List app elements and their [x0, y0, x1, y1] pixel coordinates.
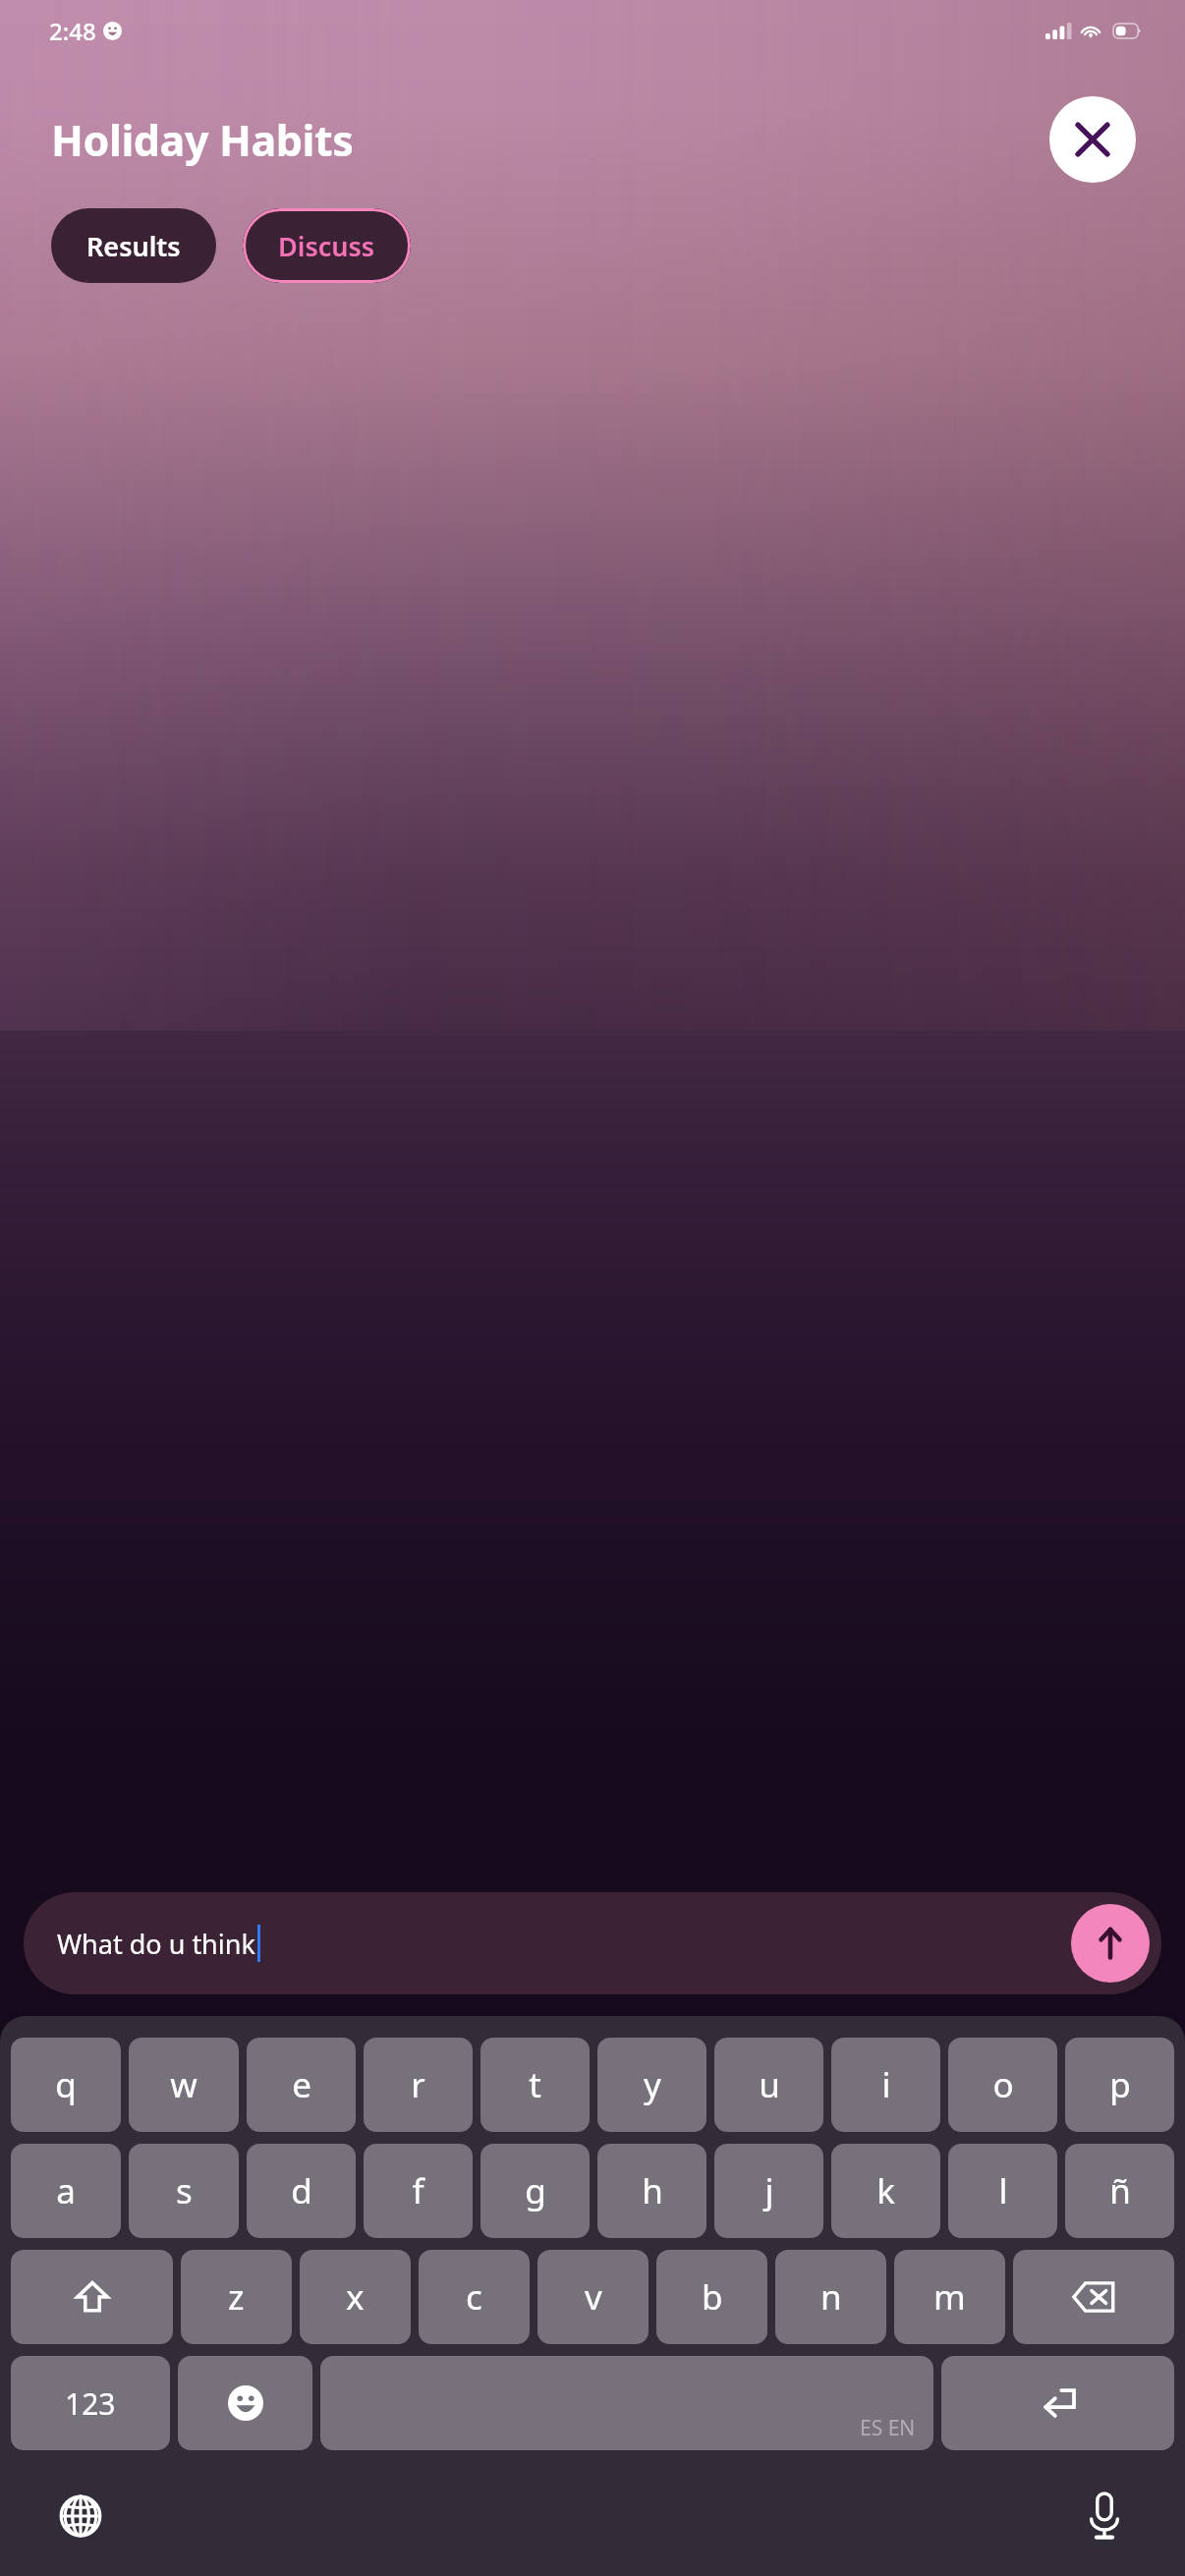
staticText: c — [466, 2273, 482, 2321]
button[interactable]: Backspace — [1013, 2250, 1174, 2344]
staticText: p — [1109, 2061, 1131, 2108]
staticText: n — [820, 2273, 842, 2321]
staticText: y — [644, 2061, 661, 2108]
staticText: k — [876, 2167, 895, 2214]
button[interactable]: u — [714, 2038, 823, 2132]
button[interactable]: j — [714, 2144, 823, 2238]
button[interactable]: a — [11, 2144, 121, 2238]
button[interactable]: ñ — [1065, 2144, 1174, 2238]
button[interactable]: c — [419, 2250, 530, 2344]
staticText: i — [881, 2061, 891, 2108]
button[interactable]: w — [129, 2038, 239, 2132]
staticText: x — [346, 2273, 365, 2321]
button[interactable]: r — [364, 2038, 473, 2132]
staticText: Results — [86, 228, 181, 264]
button[interactable]: k — [831, 2144, 940, 2238]
staticText: r — [411, 2061, 425, 2108]
button[interactable]: o — [948, 2038, 1057, 2132]
staticText: What do u think — [57, 1926, 255, 1962]
staticText: q — [55, 2061, 77, 2108]
button[interactable]: h — [597, 2144, 706, 2238]
button[interactable]: q — [11, 2038, 121, 2132]
button[interactable]: 123 — [11, 2356, 170, 2450]
staticText: ES EN — [860, 2414, 916, 2442]
button[interactable]: i — [831, 2038, 940, 2132]
staticText: u — [759, 2061, 780, 2108]
button[interactable]: m — [894, 2250, 1005, 2344]
staticText: e — [292, 2061, 311, 2108]
staticText: 123 — [65, 2383, 116, 2424]
staticText: 2:48 — [49, 15, 96, 47]
button[interactable]: What do u think — [24, 1892, 1161, 1994]
staticText: v — [585, 2273, 602, 2321]
button[interactable]: v — [537, 2250, 649, 2344]
staticText: o — [992, 2061, 1014, 2108]
staticText: b — [702, 2273, 723, 2321]
staticText: d — [291, 2167, 312, 2214]
staticText: s — [176, 2167, 193, 2214]
staticText: t — [529, 2061, 541, 2108]
button[interactable]: n — [775, 2250, 886, 2344]
button[interactable]: Results — [51, 208, 216, 283]
button[interactable]: g — [480, 2144, 590, 2238]
staticText: w — [170, 2061, 197, 2108]
button[interactable]: e — [247, 2038, 356, 2132]
button[interactable]: Voice input — [1069, 2481, 1140, 2551]
button[interactable]: x — [300, 2250, 411, 2344]
button[interactable]: Close — [1049, 96, 1136, 183]
button[interactable]: d — [247, 2144, 356, 2238]
button[interactable]: Discuss — [243, 208, 411, 283]
staticText: m — [933, 2273, 966, 2321]
staticText: z — [228, 2273, 245, 2321]
button[interactable]: b — [656, 2250, 767, 2344]
staticText: ñ — [1109, 2167, 1131, 2214]
button[interactable]: Shift — [11, 2250, 173, 2344]
button[interactable]: s — [129, 2144, 239, 2238]
button[interactable]: Space — [320, 2356, 933, 2450]
staticText: h — [642, 2167, 663, 2214]
button[interactable]: y — [597, 2038, 706, 2132]
staticText: f — [412, 2167, 424, 2214]
button[interactable]: t — [480, 2038, 590, 2132]
staticText: l — [998, 2167, 1008, 2214]
staticText: a — [56, 2167, 76, 2214]
button[interactable]: z — [181, 2250, 292, 2344]
button[interactable]: Change language — [45, 2481, 116, 2551]
staticText: Discuss — [278, 228, 375, 264]
button[interactable]: f — [364, 2144, 473, 2238]
staticText: g — [525, 2167, 546, 2214]
button[interactable]: l — [948, 2144, 1057, 2238]
button[interactable]: Emoji — [178, 2356, 312, 2450]
button[interactable]: p — [1065, 2038, 1174, 2132]
button[interactable]: Enter — [941, 2356, 1174, 2450]
staticText: j — [764, 2167, 774, 2214]
staticText: Holiday Habits — [51, 111, 1049, 169]
button[interactable]: Send — [1071, 1904, 1150, 1983]
